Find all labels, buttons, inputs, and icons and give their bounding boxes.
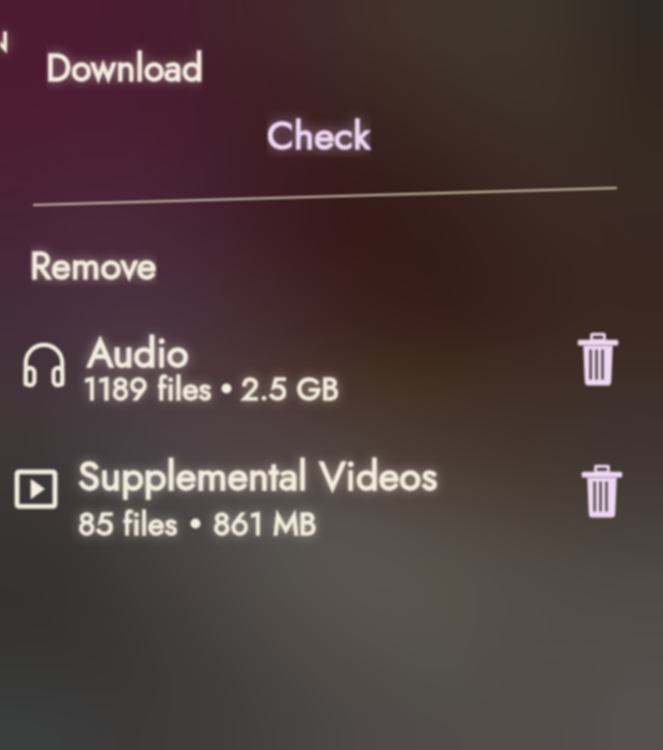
staticText: Supplemental Videos	[78, 447, 438, 505]
staticText: Remove	[30, 238, 157, 286]
staticText: 2.5 GB	[241, 366, 340, 412]
button[interactable]: Remove	[22, 234, 168, 282]
staticText: 1189 files	[83, 366, 212, 412]
button[interactable]: Delete Supplemental Videos	[574, 463, 630, 519]
button[interactable]: Check	[256, 102, 384, 152]
staticText: 85 files	[78, 501, 178, 547]
staticText: 861 MB	[213, 501, 317, 547]
staticText: Download	[46, 41, 203, 91]
button[interactable]: Delete Audio	[570, 331, 626, 387]
button[interactable]	[0, 442, 663, 546]
button[interactable]: Download	[38, 36, 214, 86]
staticText: N	[0, 21, 9, 61]
staticText: Audio	[87, 324, 189, 382]
button[interactable]	[0, 318, 663, 422]
staticText: Check	[267, 107, 371, 157]
